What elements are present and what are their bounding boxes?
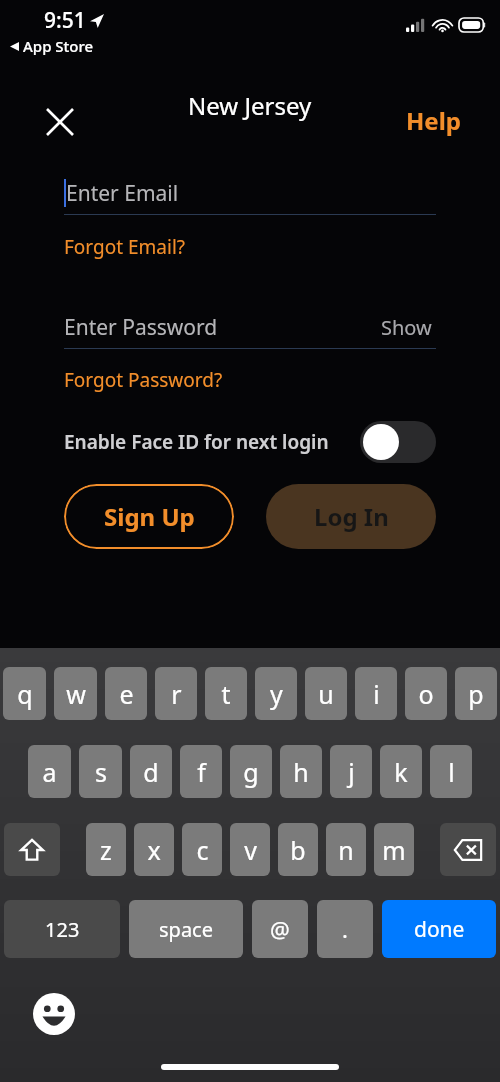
button[interactable]: a [28, 745, 71, 798]
staticText: space [159, 916, 213, 943]
button[interactable]: t [205, 667, 247, 720]
button[interactable]: e [105, 667, 147, 720]
staticText: s [95, 755, 107, 789]
button[interactable]: Forgot Email? [64, 232, 186, 262]
staticText: j [348, 755, 355, 789]
staticText: Sign Up [104, 500, 195, 533]
button[interactable]: Forgot Password? [64, 365, 223, 395]
staticText: g [243, 755, 259, 789]
button[interactable]: g [230, 745, 272, 798]
staticText: New Jersey [188, 89, 312, 122]
button[interactable]: i [355, 667, 397, 720]
staticText: d [143, 755, 159, 789]
staticText: b [290, 833, 306, 867]
staticText: k [394, 755, 408, 789]
staticText: App Store [23, 36, 94, 56]
button[interactable]: Close [36, 98, 84, 146]
staticText: p [468, 677, 484, 711]
staticText: Enter Password [64, 313, 218, 342]
button[interactable]: u [305, 667, 347, 720]
staticText: a [42, 755, 57, 789]
button[interactable]: d [130, 745, 172, 798]
button[interactable]: j [330, 745, 372, 798]
button[interactable]: Emoji [32, 992, 76, 1036]
staticText: f [197, 755, 206, 789]
button[interactable]: done [382, 900, 496, 958]
staticText: x [147, 833, 161, 867]
button[interactable]: Backspace [440, 823, 496, 876]
staticText: l [448, 755, 455, 789]
button[interactable]: y [255, 667, 297, 720]
staticText: Help [406, 104, 462, 137]
staticText: Enter Email [66, 179, 179, 208]
staticText: . [342, 914, 348, 944]
button[interactable]: n [326, 823, 366, 876]
button[interactable]: q [3, 667, 46, 720]
button[interactable]: Sign Up [64, 484, 234, 549]
button[interactable]: . [317, 900, 373, 958]
staticText: Forgot Password? [64, 367, 223, 393]
staticText: 123 [45, 916, 80, 943]
button[interactable]: f [180, 745, 222, 798]
staticText: q [17, 677, 33, 711]
button[interactable]: p [455, 667, 497, 720]
staticText: c [196, 833, 209, 867]
button[interactable]: Enter Password [64, 306, 324, 348]
staticText: m [382, 833, 406, 867]
button[interactable]: Enter Email [64, 172, 436, 214]
staticText: t [221, 677, 231, 711]
staticText: e [119, 677, 134, 711]
button[interactable]: k [380, 745, 422, 798]
staticText: r [171, 677, 182, 711]
staticText: Log In [314, 500, 389, 533]
staticText: 9:51 [44, 6, 86, 35]
staticText: v [244, 833, 257, 867]
button[interactable]: 123 [4, 900, 120, 958]
staticText: z [100, 833, 112, 867]
button[interactable]: h [280, 745, 322, 798]
button[interactable]: r [155, 667, 197, 720]
staticText: Forgot Email? [64, 234, 186, 260]
staticText: n [338, 833, 354, 867]
staticText: @ [270, 914, 290, 944]
button[interactable]: w [54, 667, 97, 720]
button[interactable]: Enable Face ID toggle [360, 421, 436, 463]
staticText: done [414, 915, 465, 944]
button[interactable]: m [374, 823, 414, 876]
button[interactable]: Log In [266, 484, 436, 549]
button[interactable]: l [430, 745, 472, 798]
button[interactable]: c [182, 823, 222, 876]
button[interactable]: s [79, 745, 122, 798]
staticText: Enable Face ID for next login [64, 429, 360, 455]
staticText: w [66, 677, 86, 711]
button[interactable]: x [134, 823, 174, 876]
button[interactable]: o [405, 667, 447, 720]
staticText: i [373, 677, 380, 711]
button[interactable]: Shift [4, 823, 60, 876]
staticText: h [293, 755, 309, 789]
button[interactable]: Help [400, 100, 468, 141]
staticText: Show [381, 314, 432, 341]
button[interactable]: space [129, 900, 243, 958]
button[interactable]: v [230, 823, 270, 876]
button[interactable]: @ [252, 900, 308, 958]
staticText: u [318, 677, 334, 711]
button[interactable]: z [86, 823, 126, 876]
staticText: o [418, 677, 434, 711]
button[interactable]: Show [377, 310, 436, 345]
button[interactable]: b [278, 823, 318, 876]
staticText: y [270, 677, 283, 711]
